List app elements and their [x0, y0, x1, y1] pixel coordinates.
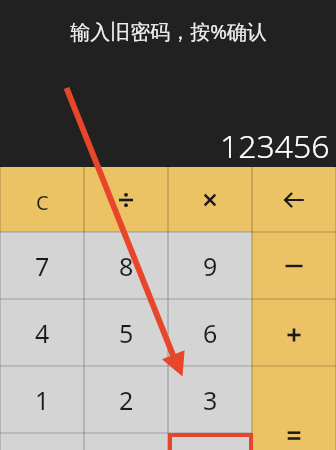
staticText: 输入旧密码，按%确认: [70, 18, 267, 45]
button[interactable]: Multiply: [168, 167, 252, 232]
button[interactable]: 8: [84, 232, 168, 299]
staticText: 8: [119, 249, 134, 283]
button[interactable]: 1: [0, 366, 84, 433]
staticText: 5: [119, 316, 134, 350]
staticText: 7: [35, 249, 50, 283]
button[interactable]: 7: [0, 232, 84, 299]
button[interactable]: 4: [0, 299, 84, 366]
staticText: C: [36, 189, 49, 216]
staticText: 9: [203, 249, 218, 283]
button[interactable]: Equals: [252, 366, 336, 450]
button[interactable]: 5: [84, 299, 168, 366]
staticText: 2: [119, 383, 134, 417]
staticText: 1: [35, 383, 50, 417]
staticText: 123456: [220, 124, 330, 168]
button[interactable]: .: [168, 433, 252, 450]
button[interactable]: 0: [84, 433, 168, 450]
button[interactable]: C: [0, 167, 84, 232]
staticText: 6: [203, 316, 218, 350]
button[interactable]: Plus: [252, 299, 336, 366]
button[interactable]: 6: [168, 299, 252, 366]
button[interactable]: Backspace: [252, 167, 336, 232]
staticText: 4: [35, 316, 50, 350]
button[interactable]: 3: [168, 366, 252, 433]
button[interactable]: %: [0, 433, 84, 450]
button[interactable]: Minus: [252, 232, 336, 299]
button[interactable]: 9: [168, 232, 252, 299]
button[interactable]: Divide: [84, 167, 168, 232]
button[interactable]: 2: [84, 366, 168, 433]
staticText: 3: [203, 383, 218, 417]
